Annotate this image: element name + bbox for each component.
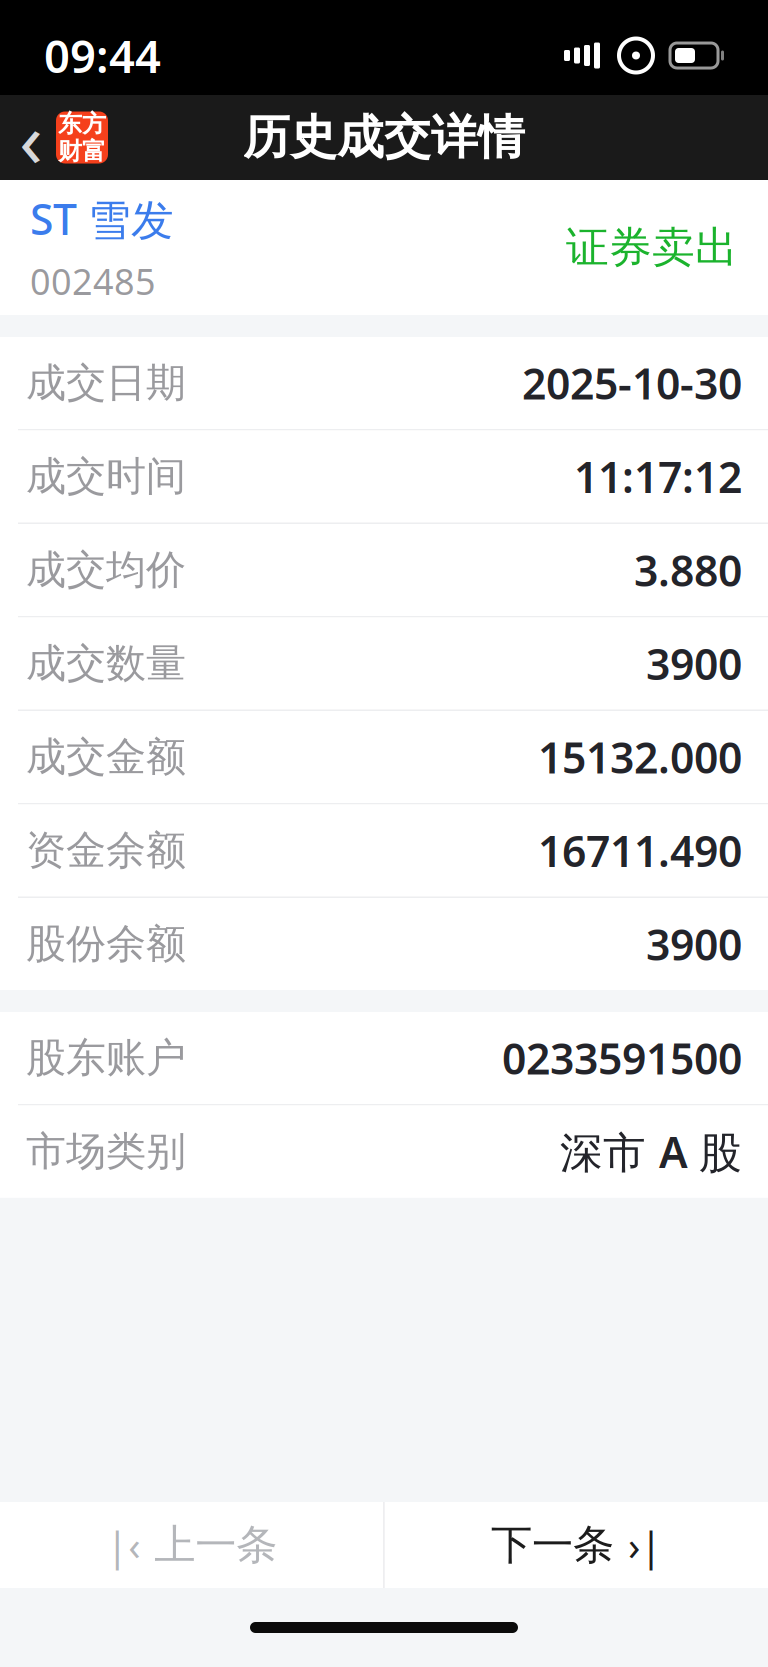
staticText: 市场类别 (26, 1127, 186, 1176)
staticText: 股份余额 (26, 919, 186, 968)
staticText: 成交数量 (26, 639, 186, 688)
staticText: 深市 A 股 (560, 1123, 742, 1180)
staticText: 东方 (58, 109, 106, 138)
staticText: 3900 (646, 916, 742, 972)
button[interactable]: 下一条 (385, 1502, 768, 1588)
staticText: ›| (628, 1518, 662, 1571)
staticText: ‹ (19, 86, 43, 189)
staticText: ST 雪发 (30, 190, 174, 247)
staticText: 16711.490 (538, 822, 742, 879)
staticText: 成交时间 (26, 452, 186, 501)
staticText: 3900 (646, 635, 742, 692)
staticText: 09:44 (44, 25, 161, 86)
staticText: 历史成交详情 (243, 109, 525, 166)
staticText: |‹ (106, 1518, 140, 1571)
staticText: 成交均价 (26, 545, 186, 594)
staticText: 证券卖出 (566, 221, 738, 274)
button[interactable]: |‹ (0, 1502, 383, 1588)
staticText: 002485 (30, 257, 156, 305)
staticText: 资金余额 (26, 826, 186, 875)
staticText: 0233591500 (502, 1030, 742, 1086)
staticText: 财富 (58, 136, 106, 166)
staticText: 3.880 (634, 542, 742, 598)
staticText: 11:17:12 (574, 448, 742, 505)
staticText: 上一条 (154, 1520, 277, 1570)
staticText: 下一条 (491, 1520, 614, 1570)
staticText: 2025-10-30 (522, 355, 742, 411)
button[interactable]: 返回 (0, 95, 118, 180)
staticText: 15132.000 (538, 729, 742, 785)
staticText: 成交金额 (26, 732, 186, 781)
staticText: 成交日期 (26, 358, 186, 407)
staticText: 股东账户 (26, 1033, 186, 1082)
